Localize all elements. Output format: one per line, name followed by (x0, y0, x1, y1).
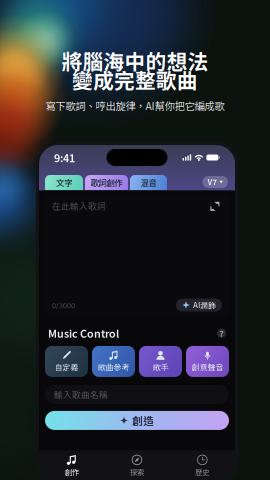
staticText: 創造 (132, 413, 154, 428)
staticText: 創意聲音 (191, 361, 223, 373)
staticText: 0/3000 (52, 300, 75, 310)
button[interactable]: 創造 (45, 411, 229, 430)
button[interactable]: V7 (202, 176, 228, 190)
staticText: 寫下歌詞、哼出旋律，AI幫你把它編成歌 (45, 98, 224, 113)
button[interactable]: 自定義 (45, 346, 88, 377)
button[interactable]: AI潤飾 (176, 298, 222, 311)
button[interactable]: 創作 (39, 454, 104, 477)
staticText: Music Control (48, 325, 119, 341)
button[interactable]: Help (217, 329, 226, 338)
staticText: 歌曲參考 (97, 361, 129, 373)
button[interactable]: 歷史 (170, 454, 235, 477)
staticText: 歌手 (152, 361, 168, 373)
button[interactable]: 文字 (45, 175, 83, 190)
staticText: 將腦海中的想法 (61, 45, 208, 75)
button[interactable]: 歌詞創作 (85, 175, 128, 190)
staticText: 在此輸入歌詞 (52, 199, 106, 212)
button[interactable]: 輸入歌曲名稱 (45, 385, 229, 404)
staticText: 歷史 (195, 466, 209, 477)
staticText: 混音 (140, 176, 156, 189)
staticText: AI潤飾 (193, 299, 216, 311)
button[interactable]: Expand editor (208, 199, 222, 213)
staticText: 9:41 (54, 150, 75, 165)
button[interactable]: 歌曲參考 (92, 346, 135, 377)
staticText: 文字 (56, 176, 72, 189)
button[interactable]: 探索 (104, 454, 170, 477)
staticText: 變成完整歌曲 (72, 64, 198, 94)
staticText: 創作 (65, 466, 79, 477)
button[interactable]: 混音 (130, 175, 167, 190)
staticText: 歌詞創作 (90, 176, 122, 189)
staticText: V7 (207, 176, 217, 188)
staticText: ? (219, 327, 223, 339)
button[interactable]: 歌手 (139, 346, 182, 377)
staticText: 探索 (130, 466, 144, 477)
staticText: 輸入歌曲名稱 (54, 388, 108, 401)
staticText: 自定義 (54, 361, 78, 373)
button[interactable]: 創意聲音 (186, 346, 229, 377)
